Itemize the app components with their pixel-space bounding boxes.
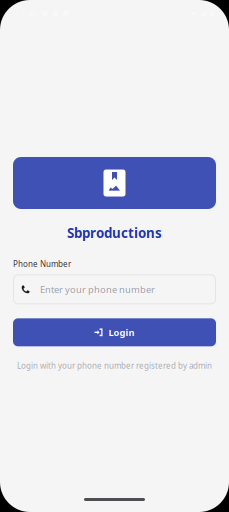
button[interactable]: Login — [0, 318, 229, 346]
staticText: Login with your phone number registered … — [17, 360, 212, 371]
staticText: Phone Number — [13, 259, 71, 269]
staticText: Sbproductions — [67, 224, 162, 242]
staticText: Login — [108, 326, 134, 338]
staticText: Enter your phone number — [40, 283, 155, 295]
